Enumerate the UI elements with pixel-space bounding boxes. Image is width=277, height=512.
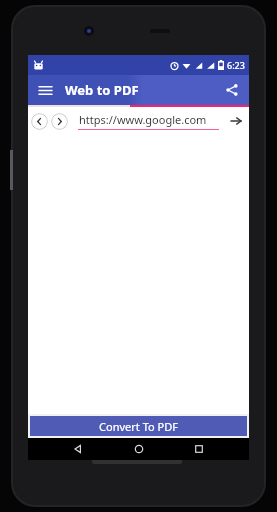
button[interactable]: https://www.google.com	[73, 109, 246, 133]
button[interactable]: Forward	[51, 113, 68, 130]
button[interactable]: Share	[221, 79, 243, 101]
button[interactable]: Back	[31, 113, 48, 130]
staticText: Convert To PDF	[99, 419, 178, 434]
button[interactable]: Recents	[188, 438, 210, 460]
button[interactable]: Back	[67, 438, 89, 460]
staticText: https://www.google.com	[79, 112, 207, 127]
button[interactable]: Menu	[34, 79, 56, 101]
button[interactable]: Convert To PDF	[30, 416, 247, 436]
button[interactable]: Home	[128, 438, 150, 460]
button[interactable]: Go	[226, 111, 246, 131]
staticText: 6:23	[227, 59, 245, 71]
staticText: Web to PDF	[65, 81, 139, 99]
